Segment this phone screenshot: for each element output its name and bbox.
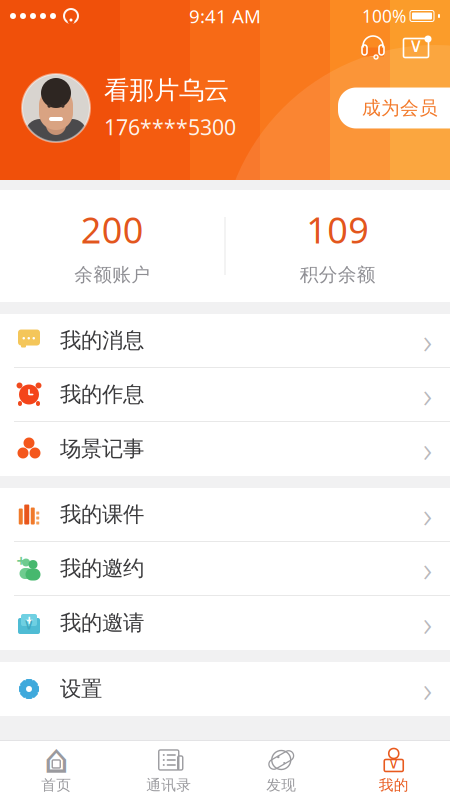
staticText: ∨ xyxy=(388,755,399,772)
staticText: ∨ xyxy=(23,615,35,633)
staticText: ⌂ xyxy=(44,736,69,782)
button[interactable]: 发现 xyxy=(225,741,337,800)
button[interactable]: 我的课件 xyxy=(0,488,450,542)
staticText: 场景记事 xyxy=(60,436,144,462)
button[interactable]: 设置 xyxy=(0,662,450,716)
staticText: 我的邀约 xyxy=(60,555,144,582)
staticText: ∨ xyxy=(408,34,423,56)
staticText: 我的作息 xyxy=(60,381,144,408)
staticText: 9:41 AM xyxy=(189,4,261,28)
staticText: › xyxy=(423,426,432,472)
button[interactable]: 我的作息 xyxy=(0,368,450,422)
staticText: › xyxy=(423,371,432,417)
button[interactable]: + xyxy=(0,596,450,650)
button[interactable]: 场景记事 xyxy=(0,422,450,476)
staticText: 发现 xyxy=(266,776,296,794)
staticText: › xyxy=(423,600,432,646)
staticText: 我的邀请 xyxy=(60,610,144,636)
button[interactable]: ⌂ xyxy=(0,741,112,800)
staticText: + xyxy=(16,550,25,571)
staticText: 通讯录 xyxy=(146,776,191,794)
staticText: 首页 xyxy=(41,776,71,794)
button[interactable]: 我的消息 xyxy=(0,314,450,368)
button[interactable]: 通讯录 xyxy=(112,741,225,800)
staticText: 200 xyxy=(81,206,144,253)
button[interactable]: 109 xyxy=(225,184,450,308)
staticText: 成为会员 xyxy=(362,96,438,119)
staticText: 109 xyxy=(306,206,369,253)
staticText: › xyxy=(423,545,432,591)
staticText: › xyxy=(423,491,432,537)
button[interactable]: 看那片乌云 xyxy=(0,74,236,142)
staticText: 设置 xyxy=(60,676,102,702)
staticText: 我的消息 xyxy=(60,327,144,354)
staticText: 看那片乌云 xyxy=(104,75,229,106)
button[interactable]: Customer service xyxy=(352,32,394,64)
staticText: › xyxy=(423,317,432,363)
button[interactable]: ∨ xyxy=(337,741,450,800)
button[interactable]: + xyxy=(0,542,450,596)
button[interactable]: 成为会员 xyxy=(338,87,450,128)
staticText: 176****5300 xyxy=(104,113,236,141)
staticText: 我的课件 xyxy=(60,501,144,528)
button[interactable]: Messages xyxy=(394,33,438,63)
staticText: 余额账户 xyxy=(74,263,150,286)
staticText: + xyxy=(25,610,33,630)
staticText: 积分余额 xyxy=(300,263,376,286)
staticText: 100% xyxy=(362,4,406,27)
staticText: 我的 xyxy=(379,776,409,794)
staticText: › xyxy=(423,666,432,712)
button[interactable]: 200 xyxy=(0,184,224,308)
